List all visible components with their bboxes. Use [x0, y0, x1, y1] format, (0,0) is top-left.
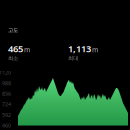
staticText: 1120 — [0, 69, 11, 76]
staticText: 856 — [2, 90, 11, 97]
staticText: 1,113 — [68, 43, 91, 55]
staticText: 최대 — [68, 55, 78, 61]
staticText: 988 — [2, 80, 11, 87]
staticText: 465 — [8, 43, 23, 55]
staticText: m — [24, 45, 30, 54]
staticText: 724 — [2, 101, 11, 108]
staticText: m — [92, 45, 98, 54]
staticText: 592 — [2, 111, 11, 118]
staticText: 고도 — [8, 27, 18, 34]
staticText: 460 — [2, 122, 11, 129]
staticText: 최소 — [8, 55, 18, 61]
